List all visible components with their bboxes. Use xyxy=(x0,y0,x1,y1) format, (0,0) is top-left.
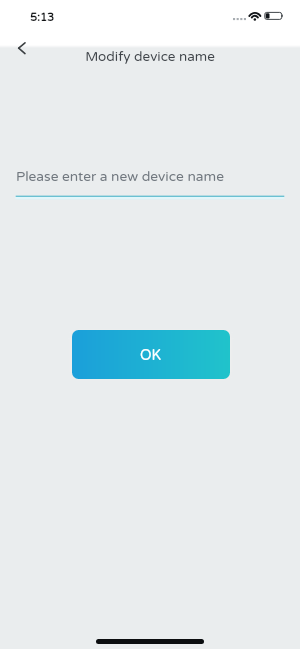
staticText: Modify device name xyxy=(0,49,300,65)
staticText: Please enter a new device name xyxy=(16,168,224,185)
button[interactable]: Please enter a new device name xyxy=(16,162,285,198)
staticText: 5:13 xyxy=(30,11,54,24)
staticText: OK xyxy=(140,347,162,364)
button[interactable]: OK xyxy=(72,330,230,379)
button[interactable]: Back xyxy=(8,34,36,62)
